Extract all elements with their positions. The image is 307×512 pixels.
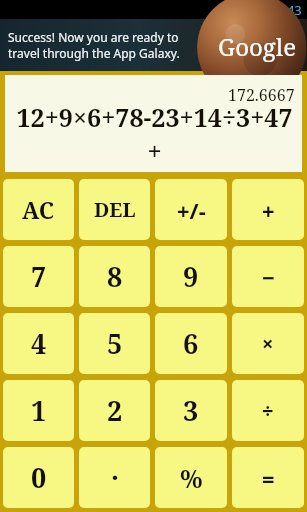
button[interactable]: + [232, 179, 304, 240]
button[interactable]: 8 [79, 246, 150, 307]
button[interactable]: ÷ [232, 380, 304, 441]
staticText: 7 [31, 258, 47, 295]
button[interactable]: % [155, 447, 227, 508]
button[interactable]: 6 [155, 313, 227, 374]
staticText: 5 [107, 325, 123, 362]
button[interactable]: 9 [155, 246, 227, 307]
button[interactable]: 4 [3, 313, 74, 374]
staticText: % [180, 461, 203, 495]
staticText: 2 [107, 392, 123, 429]
staticText: AC [22, 194, 55, 225]
staticText: 8 [107, 258, 123, 295]
staticText: × [262, 330, 274, 357]
staticText: +/- [177, 195, 206, 225]
button[interactable]: 0 [3, 447, 74, 508]
staticText: + [262, 195, 275, 225]
staticText: DEL [94, 196, 136, 223]
button[interactable]: 7 [3, 246, 74, 307]
staticText: Success! Now you are ready to [8, 29, 179, 45]
staticText: ÷ [262, 397, 274, 424]
staticText: travel through the App Galaxy. [8, 45, 180, 61]
button[interactable]: +/- [155, 179, 227, 240]
staticText: 3 [183, 392, 199, 429]
button[interactable]: 2 [79, 380, 150, 441]
staticText: 6 [183, 325, 199, 362]
staticText: 4 [31, 325, 47, 362]
button[interactable]: 172.6667 [5, 75, 302, 172]
button[interactable]: Advertisement [0, 19, 307, 71]
staticText: 3G [238, 5, 248, 15]
staticText: 9 [183, 258, 199, 295]
staticText: 172.6667 [228, 84, 295, 106]
staticText: = [262, 463, 275, 493]
staticText: − [262, 262, 275, 292]
button[interactable]: DEL [79, 179, 150, 240]
button[interactable]: − [232, 246, 304, 307]
button[interactable]: AC [3, 179, 74, 240]
button[interactable]: 5 [79, 313, 150, 374]
staticText: 0 [31, 459, 47, 496]
staticText: 2:43 [276, 1, 302, 19]
staticText: Google [218, 30, 297, 63]
staticText: · [111, 459, 119, 496]
staticText: 1 [31, 392, 47, 429]
button[interactable]: × [232, 313, 304, 374]
button[interactable]: 3 [155, 380, 227, 441]
button[interactable]: = [232, 447, 304, 508]
button[interactable]: · [79, 447, 150, 508]
button[interactable]: 1 [3, 380, 74, 441]
staticText: 12+9×6+78-23+14÷3+47+ [11, 100, 298, 168]
